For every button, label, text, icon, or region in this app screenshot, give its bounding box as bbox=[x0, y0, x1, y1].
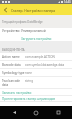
staticText: Записать настройки bbox=[2, 91, 32, 95]
staticText: Barcode data bbox=[2, 63, 25, 67]
button[interactable]: Home bbox=[28, 106, 44, 119]
staticText: 14:45 bbox=[64, 0, 71, 4]
staticText: ВЫВОД ИНТЕНТА bbox=[2, 48, 25, 52]
button[interactable]: Загрузить настройки bbox=[0, 35, 72, 42]
button[interactable]: Back bbox=[0, 4, 10, 15]
staticText: Устройство: Универсальный bbox=[2, 29, 46, 33]
staticText: Загрузить настройки bbox=[21, 37, 52, 41]
staticText: Two barcode data bbox=[2, 79, 25, 87]
staticText: com.example.ACTION bbox=[25, 55, 71, 59]
button[interactable]: Symbology type bbox=[0, 69, 72, 77]
staticText: Сканер. Настройки сканера bbox=[11, 8, 56, 12]
button[interactable]: Barcode data bbox=[0, 61, 72, 69]
button[interactable]: Recent apps bbox=[50, 106, 66, 119]
button[interactable]: Протестировать сканер штрихкодов bbox=[0, 96, 72, 102]
staticText: Текущий профиль DataWedge bbox=[2, 20, 43, 24]
button[interactable]: Back bbox=[6, 106, 22, 119]
staticText: Symbology type bbox=[2, 71, 25, 75]
button[interactable]: Two barcode data bbox=[0, 77, 72, 89]
staticText: com.symbol.datawedge.data bbox=[25, 63, 71, 67]
button[interactable]: Записать настройки bbox=[0, 89, 72, 96]
staticText: none bbox=[25, 71, 71, 75]
button[interactable]: Устройство: Универсальный bbox=[0, 28, 72, 35]
staticText: Протестировать сканер штрихкодов bbox=[2, 97, 55, 101]
staticText: Action name bbox=[2, 55, 25, 59]
button[interactable]: Action name bbox=[0, 53, 72, 61]
staticText: string bbox=[25, 79, 71, 83]
